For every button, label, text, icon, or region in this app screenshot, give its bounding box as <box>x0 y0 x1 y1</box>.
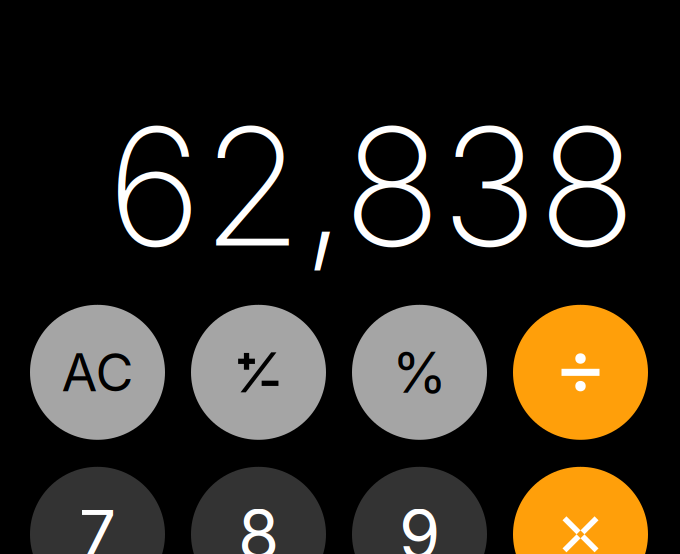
button[interactable] <box>513 467 648 554</box>
staticText: 9 <box>399 494 440 554</box>
button[interactable] <box>513 305 648 440</box>
staticText: % <box>392 338 447 406</box>
staticText: 7 <box>78 494 116 554</box>
staticText: 62,838 <box>107 88 636 285</box>
button[interactable]: % <box>352 305 487 440</box>
button[interactable] <box>191 305 326 440</box>
staticText: AC <box>61 341 133 404</box>
button[interactable]: 8 <box>191 467 326 554</box>
button[interactable]: 7 <box>30 467 165 554</box>
button[interactable]: AC <box>30 305 165 440</box>
button[interactable]: 9 <box>352 467 487 554</box>
staticText: 8 <box>238 494 279 554</box>
